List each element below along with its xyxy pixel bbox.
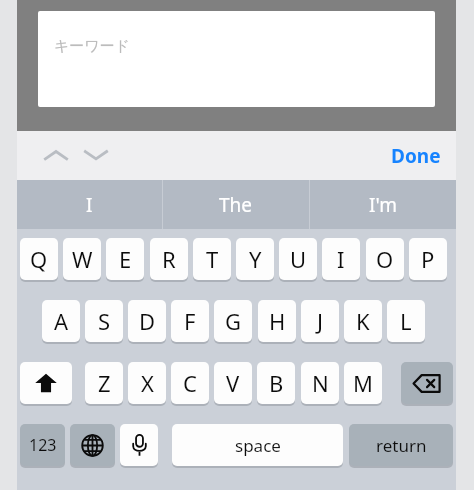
- button[interactable]: Switch keyboard: [70, 424, 115, 466]
- button[interactable]: Shift: [20, 362, 72, 404]
- button[interactable]: P: [409, 238, 447, 280]
- staticText: N: [312, 368, 329, 398]
- button[interactable]: Y: [236, 238, 274, 280]
- staticText: Y: [249, 244, 262, 274]
- staticText: O: [376, 244, 394, 274]
- button[interactable]: return: [349, 424, 453, 466]
- staticText: B: [269, 368, 284, 398]
- button[interactable]: B: [257, 362, 295, 404]
- button[interactable]: E: [106, 238, 144, 280]
- staticText: S: [98, 306, 111, 336]
- button[interactable]: space: [172, 424, 343, 466]
- button[interactable]: G: [214, 300, 252, 342]
- button[interactable]: Dictate: [120, 424, 158, 466]
- staticText: A: [54, 306, 69, 336]
- staticText: W: [72, 244, 93, 274]
- staticText: The: [219, 192, 253, 218]
- button[interactable]: F: [171, 300, 209, 342]
- staticText: J: [317, 306, 324, 336]
- button[interactable]: O: [366, 238, 404, 280]
- button[interactable]: N: [301, 362, 339, 404]
- button[interactable]: X: [128, 362, 166, 404]
- button[interactable]: Backspace: [401, 362, 453, 404]
- staticText: キーワード: [54, 37, 131, 56]
- staticText: Done: [391, 143, 441, 169]
- staticText: 123: [29, 434, 57, 456]
- button[interactable]: M: [344, 362, 382, 404]
- button[interactable]: S: [85, 300, 123, 342]
- button[interactable]: I: [17, 180, 162, 229]
- staticText: D: [139, 306, 156, 336]
- button[interactable]: Next field: [77, 139, 115, 172]
- staticText: Z: [98, 368, 111, 398]
- staticText: I'm: [369, 192, 397, 218]
- button[interactable]: V: [214, 362, 252, 404]
- staticText: V: [226, 368, 240, 398]
- button[interactable]: Q: [20, 238, 58, 280]
- staticText: I: [86, 192, 93, 218]
- staticText: X: [141, 368, 154, 398]
- staticText: return: [376, 434, 427, 457]
- staticText: R: [162, 244, 176, 274]
- staticText: K: [356, 306, 370, 336]
- button[interactable]: R: [150, 238, 188, 280]
- button[interactable]: I: [322, 238, 360, 280]
- button[interactable]: Done: [385, 136, 447, 176]
- button[interactable]: C: [171, 362, 209, 404]
- button[interactable]: 123: [20, 424, 65, 466]
- staticText: C: [183, 368, 197, 398]
- staticText: Q: [30, 244, 48, 274]
- button[interactable]: Previous field: [37, 139, 75, 172]
- button[interactable]: W: [63, 238, 101, 280]
- staticText: P: [421, 244, 435, 274]
- staticText: F: [184, 306, 196, 336]
- button[interactable]: The: [163, 180, 309, 229]
- staticText: I: [337, 244, 345, 274]
- button[interactable]: K: [344, 300, 382, 342]
- staticText: H: [269, 306, 286, 336]
- staticText: L: [400, 306, 412, 336]
- button[interactable]: U: [279, 238, 317, 280]
- staticText: U: [290, 244, 307, 274]
- staticText: E: [119, 244, 132, 274]
- button[interactable]: Z: [85, 362, 123, 404]
- button[interactable]: キーワード: [38, 11, 435, 107]
- button[interactable]: J: [301, 300, 339, 342]
- staticText: G: [225, 306, 242, 336]
- staticText: T: [206, 244, 219, 274]
- button[interactable]: A: [42, 300, 80, 342]
- button[interactable]: D: [128, 300, 166, 342]
- button[interactable]: I'm: [310, 180, 456, 229]
- staticText: M: [353, 368, 373, 398]
- button[interactable]: T: [193, 238, 231, 280]
- staticText: space: [235, 434, 281, 457]
- button[interactable]: H: [258, 300, 296, 342]
- button[interactable]: L: [387, 300, 425, 342]
